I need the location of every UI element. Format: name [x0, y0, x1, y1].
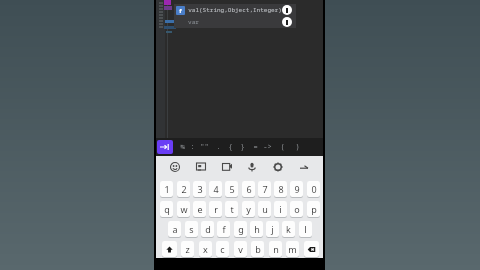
staticText: h	[254, 223, 260, 235]
button[interactable]: 0	[306, 180, 320, 197]
button[interactable]: ->	[262, 140, 273, 154]
staticText: 5	[229, 183, 235, 195]
button[interactable]: u	[257, 200, 271, 217]
button[interactable]: (	[277, 140, 288, 154]
button[interactable]: 6	[241, 180, 255, 197]
button[interactable]: 2	[176, 180, 190, 197]
staticText: x	[203, 243, 208, 255]
button[interactable]: =	[250, 140, 261, 154]
button[interactable]: r	[208, 200, 222, 217]
staticText: w	[180, 203, 188, 215]
staticText: 2	[181, 183, 187, 195]
button[interactable]: c	[215, 240, 229, 257]
staticText: b	[255, 243, 261, 255]
button[interactable]: l	[298, 220, 312, 237]
button[interactable]: ↹	[177, 140, 188, 154]
button[interactable]: i	[273, 200, 287, 217]
staticText: 8	[278, 183, 284, 195]
button[interactable]: v	[233, 240, 247, 257]
button[interactable]: a	[167, 220, 181, 237]
staticText: u	[262, 203, 268, 215]
staticText: 3	[197, 183, 203, 195]
staticText: s	[189, 223, 194, 235]
button[interactable]: var	[174, 17, 296, 27]
button[interactable]: Settings	[267, 157, 289, 177]
staticText: q	[164, 203, 170, 215]
staticText: l	[304, 223, 307, 235]
staticText: .	[216, 142, 221, 152]
button[interactable]: g	[233, 220, 247, 237]
staticText: i	[279, 203, 282, 215]
button[interactable]: m	[285, 240, 299, 257]
button[interactable]: Stickers	[190, 157, 212, 177]
staticText: val(String,Object,Integer)	[188, 6, 282, 14]
staticText: }	[240, 142, 245, 152]
staticText: 0	[311, 183, 317, 195]
button[interactable]: z	[180, 240, 194, 257]
button[interactable]: j	[265, 220, 279, 237]
button[interactable]: f	[174, 4, 296, 16]
button[interactable]: :	[187, 140, 198, 154]
staticText: 7	[262, 183, 268, 195]
staticText: :	[190, 142, 195, 152]
button[interactable]: Backspace	[303, 240, 319, 257]
button[interactable]: 9	[289, 180, 303, 197]
button[interactable]: }	[237, 140, 248, 154]
staticText: d	[205, 223, 211, 235]
button[interactable]: 1	[159, 180, 173, 197]
staticText: y	[246, 203, 251, 215]
staticText: t	[230, 203, 234, 215]
button[interactable]: p	[306, 200, 320, 217]
button[interactable]: ""	[199, 140, 210, 154]
button[interactable]: e	[192, 200, 206, 217]
staticText: o	[294, 203, 300, 215]
staticText: 9	[294, 183, 300, 195]
button[interactable]: Tab	[157, 140, 173, 154]
button[interactable]: GIF	[216, 157, 238, 177]
button[interactable]: t	[224, 200, 238, 217]
button[interactable]: Emoji	[164, 157, 186, 177]
button[interactable]: w	[176, 200, 190, 217]
staticText: r	[214, 203, 218, 215]
button[interactable]: 3	[192, 180, 206, 197]
staticText: ->	[263, 142, 272, 152]
button[interactable]: q	[159, 200, 173, 217]
button[interactable]: k	[281, 220, 295, 237]
button[interactable]: b	[250, 240, 264, 257]
staticText: ""	[200, 142, 209, 152]
button[interactable]: h	[249, 220, 263, 237]
button[interactable]: o	[289, 200, 303, 217]
button[interactable]: )	[292, 140, 303, 154]
button[interactable]: f	[174, 4, 296, 28]
button[interactable]: d	[200, 220, 214, 237]
button[interactable]: Shift	[161, 240, 177, 257]
button[interactable]: x	[198, 240, 212, 257]
button[interactable]: 8	[273, 180, 287, 197]
staticText: f	[179, 7, 182, 15]
staticText: e	[197, 203, 203, 215]
button[interactable]: 7	[257, 180, 271, 197]
button[interactable]: 5	[224, 180, 238, 197]
staticText: =	[253, 142, 258, 152]
button[interactable]: Voice input	[241, 157, 263, 177]
button[interactable]: 4	[208, 180, 222, 197]
staticText: 4	[213, 183, 219, 195]
button[interactable]: .	[213, 140, 224, 154]
button[interactable]: s	[184, 220, 198, 237]
staticText: g	[238, 223, 244, 235]
staticText: 1	[164, 183, 170, 195]
button[interactable]: Documentation	[282, 17, 292, 27]
staticText: (	[280, 142, 285, 152]
staticText: z	[185, 243, 190, 255]
button[interactable]: f	[216, 220, 230, 237]
button[interactable]: n	[268, 240, 282, 257]
button[interactable]: More	[293, 157, 315, 177]
staticText: )	[295, 142, 300, 152]
button[interactable]: y	[241, 200, 255, 217]
staticText: 6	[246, 183, 252, 195]
staticText: n	[273, 243, 279, 255]
button[interactable]: {	[225, 140, 236, 154]
staticText: c	[220, 243, 225, 255]
staticText: ↹	[180, 143, 185, 151]
button[interactable]: Info	[282, 5, 292, 15]
